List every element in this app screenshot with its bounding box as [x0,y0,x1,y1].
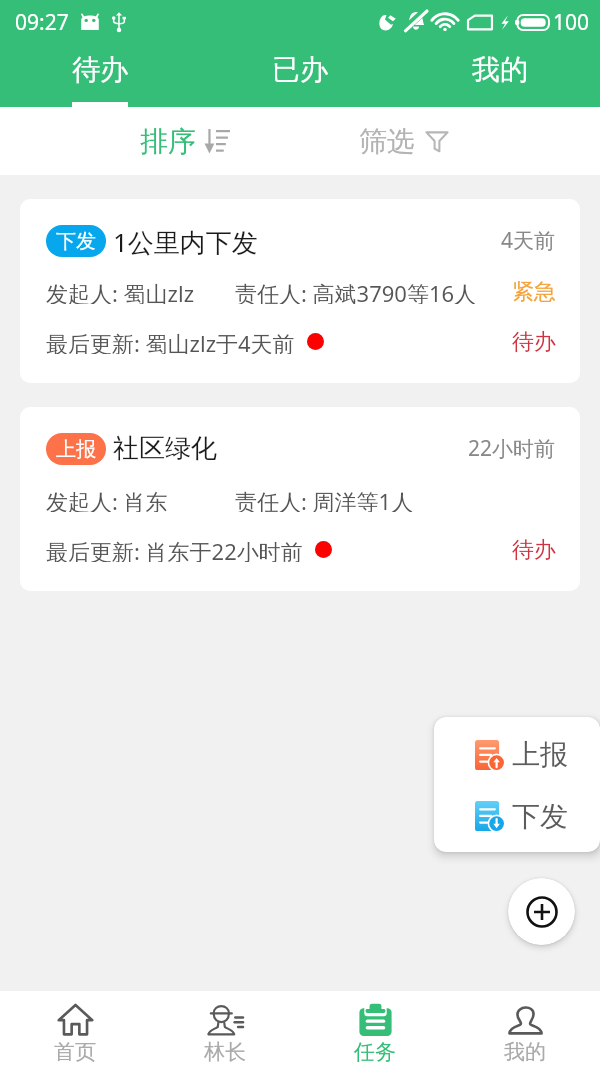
staticText: 已办 [272,52,328,87]
staticText: 紧急 [512,278,556,304]
staticText: 上报 [512,737,568,772]
button[interactable]: 上报 [20,407,580,591]
button[interactable]: 下发 [434,784,600,852]
button[interactable]: 排序 [112,107,258,175]
staticText: 待办 [512,536,556,562]
staticText: 任务 [354,1039,396,1065]
staticText: 22小时前 [468,434,556,463]
button[interactable]: 下发 [20,199,580,383]
staticText: 1公里内下发 [113,224,258,257]
button[interactable]: 筛选 [331,107,477,175]
staticText: 责任人: 周洋等1人 [235,486,414,512]
staticText: 上报 [56,437,96,462]
staticText: 最后更新: 蜀山zlz于4天前 [46,328,295,354]
staticText: 责任人: 高斌3790等16人 [235,278,477,304]
staticText: 筛选 [359,124,415,159]
staticText: 下发 [512,799,568,834]
staticText: 待办 [72,52,128,87]
staticText: 发起人: 蜀山zlz [46,278,194,304]
staticText: 最后更新: 肖东于22小时前 [46,536,303,562]
button[interactable]: 任务 [300,991,450,1067]
staticText: 首页 [54,1039,96,1065]
button[interactable]: 首页 [0,991,150,1067]
button[interactable]: 我的 [450,991,600,1067]
staticText: 下发 [56,229,96,254]
button[interactable]: 上报 [434,717,600,784]
button[interactable]: 林长 [150,991,300,1067]
staticText: 4天前 [501,226,556,255]
staticText: 待办 [512,328,556,354]
button[interactable]: 我的 [400,44,600,107]
button[interactable]: 已办 [200,44,400,107]
staticText: 100 [553,8,590,37]
staticText: 09:27 [15,8,69,37]
button[interactable]: 待办 [0,44,200,107]
staticText: 排序 [140,124,196,159]
staticText: 我的 [472,52,528,87]
button[interactable]: Add [508,878,575,945]
staticText: 社区绿化 [113,432,217,465]
staticText: 发起人: 肖东 [46,486,168,512]
staticText: 林长 [204,1039,246,1065]
staticText: 我的 [504,1039,546,1065]
